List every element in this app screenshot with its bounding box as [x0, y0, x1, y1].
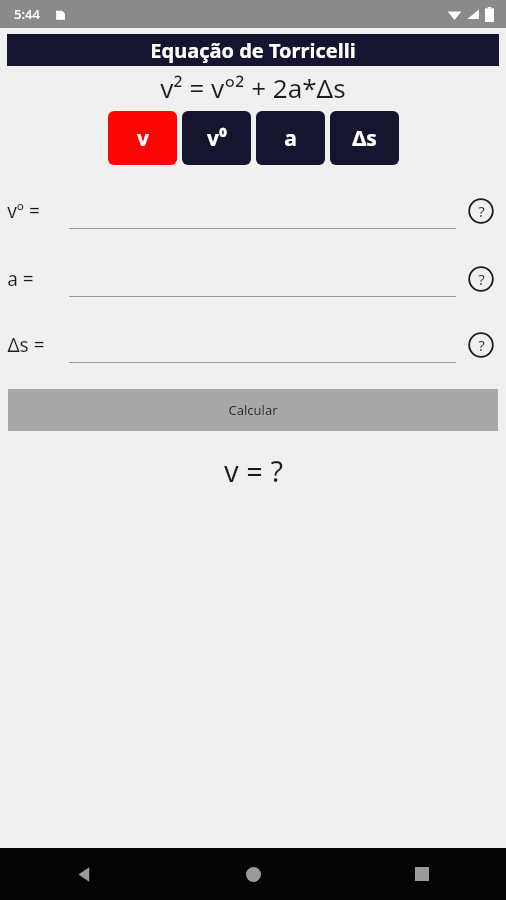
button[interactable]: Voltar — [60, 850, 108, 898]
staticText: v — [137, 124, 149, 153]
button[interactable]: Equação de Torricelli — [7, 34, 499, 66]
button[interactable]: Ajuda — [466, 330, 496, 360]
staticText: ? — [478, 335, 485, 355]
staticText: Δs = — [7, 332, 45, 358]
staticText: v² = v°² + 2a*Δs — [160, 70, 346, 105]
staticText: Equação de Torricelli — [150, 37, 356, 64]
staticText: Δs — [352, 124, 377, 153]
button[interactable]: Ajuda — [466, 196, 496, 226]
button[interactable]: a — [256, 111, 325, 165]
staticText: ? — [478, 269, 485, 289]
button[interactable]: v⁰ — [182, 111, 251, 165]
button[interactable]: v — [108, 111, 177, 165]
staticText: v⁰ — [207, 124, 227, 153]
staticText: 5:44 — [14, 5, 40, 23]
staticText: a — [284, 124, 297, 153]
staticText: vº = — [7, 198, 40, 224]
staticText: Calcular — [228, 401, 278, 419]
button[interactable]: Início — [229, 850, 277, 898]
staticText: a = — [7, 266, 34, 292]
button[interactable] — [65, 193, 462, 229]
button[interactable] — [65, 261, 462, 297]
button[interactable]: Δs — [330, 111, 399, 165]
button[interactable]: Calcular — [8, 389, 498, 431]
button[interactable]: Recentes — [398, 850, 446, 898]
button[interactable] — [65, 327, 462, 363]
staticText: v = ? — [224, 451, 283, 490]
staticText: ? — [478, 201, 485, 221]
button[interactable]: Ajuda — [466, 264, 496, 294]
